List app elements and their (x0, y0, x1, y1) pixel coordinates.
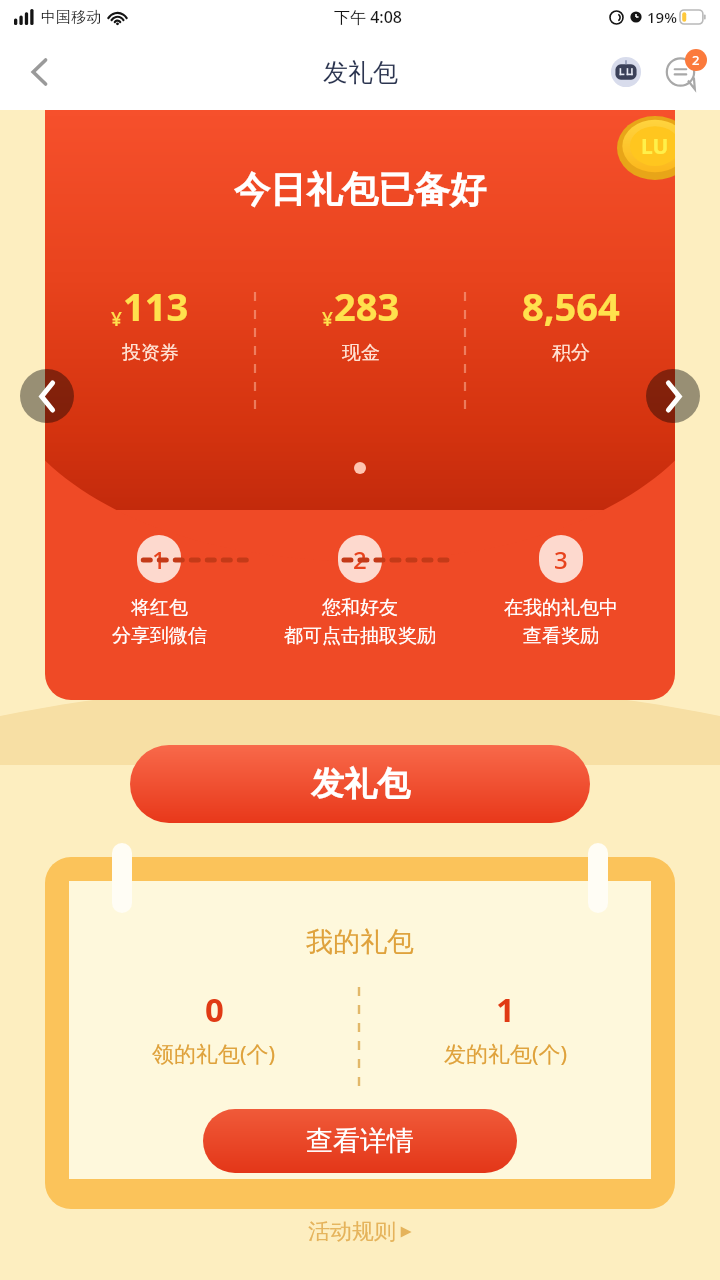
button[interactable]: 查看详情 (203, 1109, 517, 1173)
staticText: 1 (496, 987, 515, 1032)
button[interactable]: 1 (59, 535, 259, 648)
button[interactable]: Previous (20, 369, 74, 423)
staticText: 都可点击抽取奖励 (284, 624, 436, 648)
staticText: 下午 4:08 (334, 6, 402, 28)
staticText: 领的礼包(个) (152, 1038, 276, 1068)
staticText: 您和好友 (322, 596, 398, 620)
button[interactable]: 活动规则 (0, 1218, 720, 1246)
staticText: 中国移动 (41, 8, 101, 27)
staticText: 查看详情 (306, 1124, 414, 1158)
button[interactable]: Messages, 2 unread (656, 46, 708, 98)
staticText: ¥ (322, 306, 333, 332)
staticText: 8,564 (522, 280, 620, 332)
staticText: 19% (647, 7, 677, 27)
staticText: 2 (353, 543, 367, 576)
staticText: 积分 (552, 341, 590, 365)
staticText: 113 (123, 280, 189, 332)
staticText: 发的礼包(个) (444, 1038, 568, 1068)
button[interactable]: Back (14, 46, 66, 98)
staticText: 分享到微信 (112, 624, 207, 648)
staticText: 活动规则 (308, 1218, 396, 1246)
staticText: 投资券 (122, 341, 179, 365)
staticText: 在我的礼包中 (504, 596, 618, 620)
staticText: 查看奖励 (523, 624, 599, 648)
staticText: 3 (554, 543, 568, 576)
staticText: 我的礼包 (306, 925, 414, 959)
staticText: 发礼包 (311, 763, 410, 805)
button[interactable]: 发礼包 (130, 745, 590, 823)
button[interactable]: 2 (259, 535, 460, 648)
staticText: 2 (692, 51, 700, 69)
staticText: 283 (334, 280, 400, 332)
staticText: 发礼包 (323, 57, 398, 88)
staticText: 今日礼包已备好 (234, 167, 486, 212)
staticText: 0 (205, 987, 224, 1032)
staticText: ¥ (111, 306, 122, 332)
button[interactable]: 3 (460, 535, 661, 648)
staticText: 现金 (342, 341, 380, 365)
staticText: LU (641, 132, 669, 161)
button[interactable]: Robot assistant (602, 48, 650, 96)
staticText: 1 (152, 543, 166, 576)
staticText: 将红包 (131, 596, 188, 620)
button[interactable]: Next (646, 369, 700, 423)
